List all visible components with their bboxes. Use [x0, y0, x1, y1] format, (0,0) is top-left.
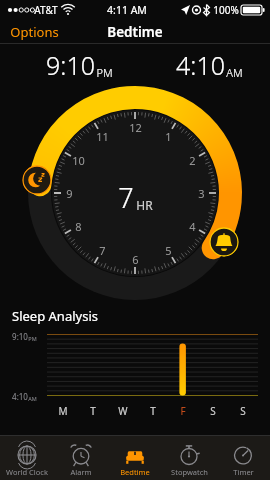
staticText: 4:10	[12, 391, 28, 402]
button[interactable]: Options	[0, 21, 69, 43]
button[interactable]: Alarm	[54, 440, 108, 477]
button[interactable]: Bedtime handle	[22, 165, 52, 195]
staticText: Bedtime	[120, 467, 150, 477]
staticText: AT&T	[34, 3, 58, 17]
staticText: 2	[189, 153, 196, 168]
staticText: 7	[99, 243, 106, 258]
staticText: Options	[10, 23, 59, 41]
staticText: 7	[118, 179, 134, 216]
staticText: PM	[96, 65, 113, 80]
button[interactable]: Bedtime	[108, 440, 162, 477]
staticText: AM	[28, 395, 37, 402]
staticText: S	[240, 404, 246, 418]
staticText: 100%	[213, 3, 239, 17]
staticText: T	[150, 404, 156, 418]
staticText: 9:10	[12, 331, 28, 342]
staticText: Stopwatch	[171, 467, 208, 477]
staticText: AM	[226, 65, 243, 80]
staticText: 11	[96, 129, 109, 144]
staticText: Sleep Analysis	[12, 307, 98, 325]
staticText: 9	[66, 186, 73, 201]
staticText: 5	[165, 243, 172, 258]
staticText: 6	[132, 252, 139, 267]
staticText: T	[90, 404, 96, 418]
button[interactable]: Wake up handle	[209, 227, 239, 257]
staticText: F	[180, 404, 186, 418]
staticText: 8	[75, 219, 82, 234]
staticText: 12	[129, 120, 142, 135]
staticText: S	[210, 404, 216, 418]
staticText: Bedtime	[107, 23, 163, 41]
staticText: 10	[72, 153, 85, 168]
staticText: HR	[136, 197, 153, 213]
button[interactable]: World Clock	[0, 440, 54, 477]
staticText: Alarm	[70, 467, 92, 477]
staticText: 9:10	[46, 48, 95, 82]
staticText: M	[58, 404, 68, 418]
staticText: PM	[28, 335, 37, 342]
staticText: 4:11 AM	[107, 3, 147, 17]
button[interactable]: Timer	[216, 440, 270, 477]
staticText: 4:10	[176, 48, 225, 82]
staticText: 3	[198, 186, 205, 201]
staticText: 1	[165, 129, 172, 144]
staticText: 4	[189, 219, 196, 234]
staticText: World Clock	[6, 467, 48, 477]
button[interactable]: Stopwatch	[162, 440, 216, 477]
staticText: Timer	[233, 467, 254, 477]
staticText: W	[118, 404, 128, 418]
